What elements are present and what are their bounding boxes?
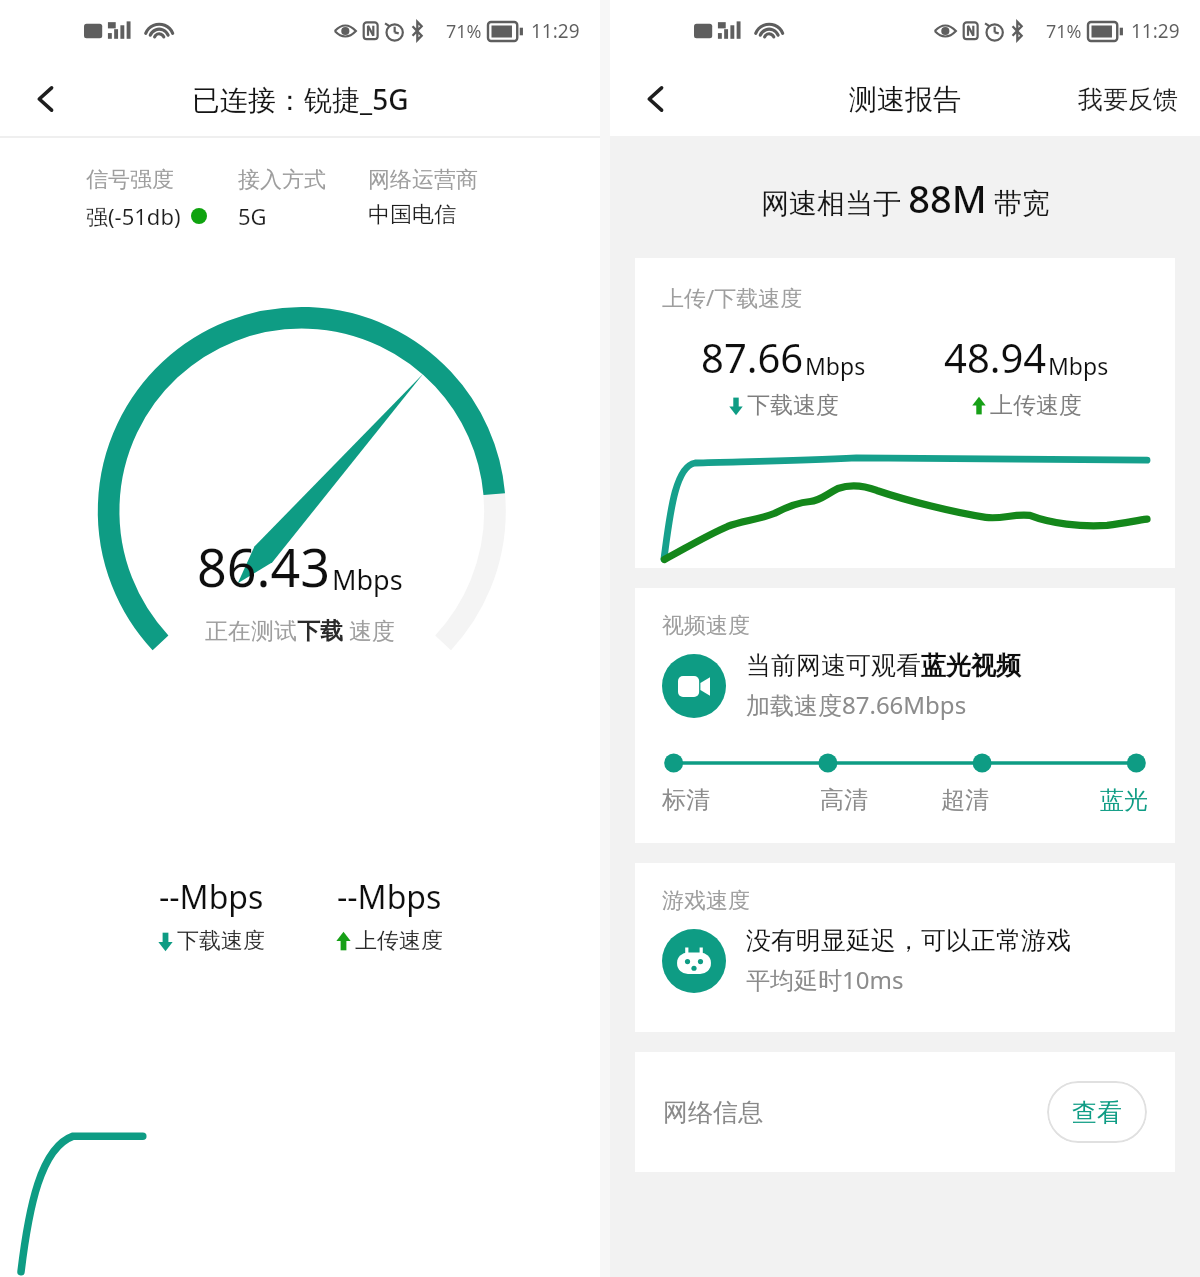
staticText: 标清 — [662, 785, 710, 815]
staticText: 5G — [238, 201, 267, 231]
staticText: 查看 — [1072, 1097, 1122, 1128]
staticText: 48.94 — [944, 330, 1047, 384]
button[interactable]: Back — [610, 62, 702, 136]
staticText: 网络信息 — [663, 1097, 763, 1128]
staticText: 已连接：锐捷_5G — [192, 80, 409, 118]
staticText: 接入方式 — [238, 166, 326, 194]
staticText: 超清 — [941, 785, 989, 815]
staticText: 下载速度 — [177, 927, 265, 955]
staticText: Mbps — [1048, 350, 1109, 381]
staticText: 强(-51db) — [86, 201, 181, 231]
button[interactable]: 网络信息 — [635, 1052, 1175, 1172]
staticText: 87.66 — [701, 330, 804, 384]
staticText: Mbps — [332, 561, 403, 598]
staticText: 我要反馈 — [1078, 84, 1178, 115]
staticText: 71% — [446, 19, 482, 44]
button[interactable]: 没有明显延迟，可以正常游戏 — [662, 925, 1148, 996]
button[interactable]: 超清 — [904, 785, 1026, 815]
staticText: 下载速度 — [747, 391, 839, 420]
staticText: 平均延时10ms — [746, 963, 904, 996]
staticText: 高清 — [820, 785, 868, 815]
staticText: 86.43 — [197, 531, 330, 602]
staticText: 加载速度87.66Mbps — [746, 688, 967, 721]
staticText: 视频速度 — [662, 612, 750, 640]
button[interactable]: Back — [0, 62, 92, 136]
button[interactable]: 蓝光 — [1026, 785, 1148, 815]
staticText: 11:29 — [531, 18, 580, 44]
staticText: 信号强度 — [86, 166, 174, 194]
staticText: 上传/下载速度 — [662, 282, 803, 312]
staticText: 游戏速度 — [662, 887, 750, 915]
staticText: 上传速度 — [355, 927, 443, 955]
button[interactable]: 当前网速可观看蓝光视频 — [662, 650, 1148, 721]
staticText: 网络运营商 — [368, 166, 478, 194]
button[interactable]: 高清 — [783, 785, 904, 815]
staticText: Mbps — [805, 350, 866, 381]
button[interactable]: --Mbps — [151, 869, 271, 961]
staticText: 蓝光 — [1100, 785, 1148, 815]
staticText: 网速相当于 88M 带宽 — [761, 172, 1050, 224]
button[interactable]: --Mbps — [329, 869, 449, 961]
staticText: --Mbps — [337, 875, 442, 919]
button[interactable]: 标清 — [662, 785, 783, 815]
button[interactable]: 我要反馈 — [1056, 62, 1200, 136]
button[interactable]: 查看 — [1047, 1081, 1147, 1143]
staticText: 正在测试下载 速度 — [205, 614, 395, 645]
staticText: --Mbps — [159, 875, 264, 919]
staticText: 当前网速可观看蓝光视频 — [746, 650, 1021, 681]
staticText: 11:29 — [1131, 18, 1180, 44]
staticText: 测速报告 — [849, 82, 961, 117]
staticText: 71% — [1046, 19, 1082, 44]
staticText: 中国电信 — [368, 201, 456, 229]
staticText: 没有明显延迟，可以正常游戏 — [746, 925, 1071, 956]
staticText: 上传速度 — [990, 391, 1082, 420]
